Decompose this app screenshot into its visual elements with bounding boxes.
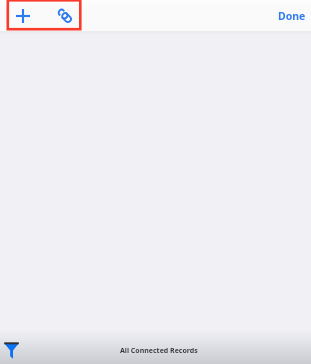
staticText: All Connected Records <box>120 346 198 356</box>
staticText: Done <box>278 9 306 23</box>
button[interactable]: Link <box>52 3 78 29</box>
button[interactable]: All Connected Records <box>118 344 200 358</box>
button[interactable]: Filter <box>0 339 22 361</box>
button[interactable]: Done <box>276 5 308 27</box>
button[interactable]: Add <box>10 3 36 29</box>
